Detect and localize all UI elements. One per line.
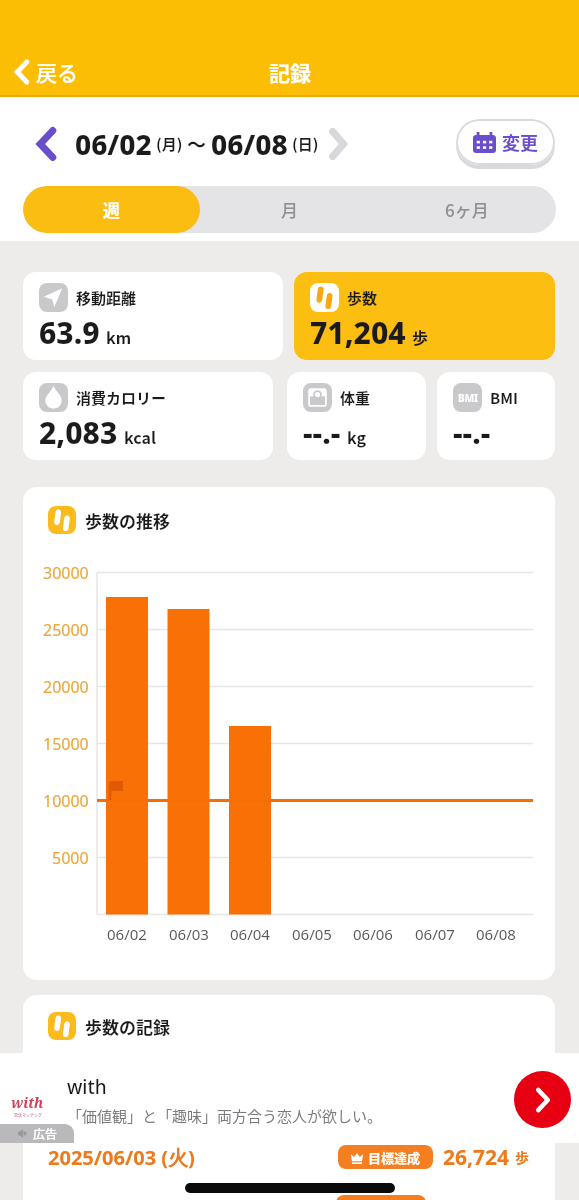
staticText: 歩 bbox=[515, 1147, 529, 1167]
staticText: 06/08 bbox=[211, 125, 288, 163]
staticText: 「価値観」と「趣味」両方合う恋人が欲しい。 bbox=[67, 1105, 383, 1127]
staticText: 歩 bbox=[412, 325, 429, 348]
staticText: 歩数の推移 bbox=[85, 508, 170, 533]
staticText: 月 bbox=[281, 197, 298, 222]
staticText: km bbox=[106, 325, 132, 348]
button[interactable]: 歩数 bbox=[294, 272, 555, 360]
button[interactable]: 月 bbox=[200, 186, 378, 233]
staticText: 2,083 bbox=[39, 412, 118, 453]
staticText: 25000 bbox=[43, 619, 89, 641]
staticText: BMI bbox=[458, 391, 478, 405]
staticText: BMI bbox=[490, 387, 518, 409]
staticText: --.- bbox=[303, 412, 341, 453]
staticText: 06/04 bbox=[230, 924, 270, 944]
staticText: with bbox=[11, 1093, 44, 1112]
button[interactable]: BMI bbox=[437, 372, 555, 460]
staticText: 恋活マッチング bbox=[14, 1112, 42, 1118]
staticText: --.- bbox=[453, 412, 491, 453]
staticText: kg bbox=[347, 425, 367, 448]
staticText: 歩数の記録 bbox=[85, 1014, 170, 1039]
staticText: 歩数 bbox=[347, 287, 378, 309]
staticText: 〜 bbox=[187, 130, 207, 158]
staticText: 戻る bbox=[36, 57, 78, 87]
staticText: 06/07 bbox=[415, 924, 455, 944]
staticText: 消費カロリー bbox=[76, 387, 167, 409]
staticText: 10000 bbox=[43, 790, 89, 812]
staticText: 71,204 bbox=[310, 312, 406, 353]
staticText: (月) bbox=[156, 133, 183, 155]
button[interactable]: 6ヶ月 bbox=[378, 186, 556, 233]
button[interactable] bbox=[36, 128, 57, 160]
staticText: 06/02 bbox=[75, 125, 152, 163]
staticText: 26,724 bbox=[443, 1143, 510, 1171]
staticText: 06/08 bbox=[476, 924, 516, 944]
button[interactable]: 体重 bbox=[287, 372, 426, 460]
staticText: 6ヶ月 bbox=[445, 197, 489, 222]
staticText: with bbox=[67, 1074, 107, 1100]
staticText: 目標達成 bbox=[368, 1148, 421, 1167]
staticText: 20000 bbox=[43, 676, 89, 698]
staticText: 変更 bbox=[502, 129, 538, 155]
button[interactable]: 戻る bbox=[14, 57, 78, 87]
staticText: 15000 bbox=[43, 733, 89, 755]
staticText: kcal bbox=[124, 425, 156, 448]
staticText: 63.9 bbox=[39, 312, 100, 353]
staticText: 記録 bbox=[269, 57, 311, 87]
staticText: 06/06 bbox=[353, 924, 393, 944]
staticText: 5000 bbox=[52, 847, 89, 869]
button[interactable]: 消費カロリー bbox=[23, 372, 273, 460]
button[interactable]: with bbox=[0, 1053, 579, 1143]
staticText: 2025/06/03 (火) bbox=[48, 1144, 195, 1171]
button[interactable]: 変更 bbox=[456, 119, 555, 169]
staticText: 広告 bbox=[33, 1125, 58, 1142]
staticText: 06/02 bbox=[107, 924, 147, 944]
staticText: 06/03 bbox=[169, 924, 209, 944]
staticText: 体重 bbox=[340, 387, 371, 409]
button[interactable]: 移動距離 bbox=[23, 272, 283, 360]
staticText: 週 bbox=[103, 197, 120, 222]
button[interactable]: 2025/06/03 (火) bbox=[48, 1143, 529, 1171]
staticText: 移動距離 bbox=[76, 287, 137, 309]
staticText: (日) bbox=[292, 133, 319, 155]
button[interactable] bbox=[514, 1071, 571, 1128]
staticText: 06/05 bbox=[292, 924, 332, 944]
staticText: 30000 bbox=[43, 562, 89, 584]
button[interactable]: 週 bbox=[23, 186, 200, 233]
